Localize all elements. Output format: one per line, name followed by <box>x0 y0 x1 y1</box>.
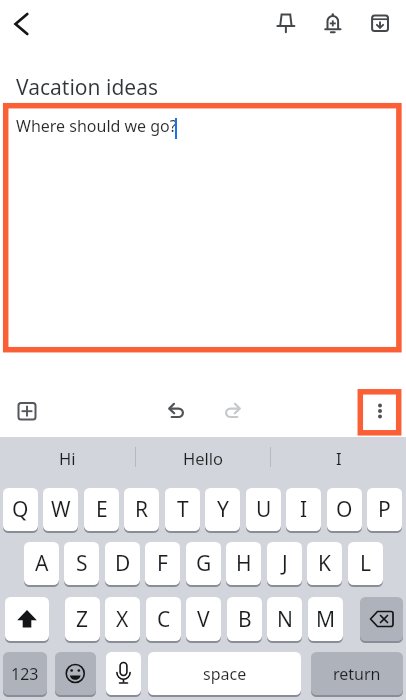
button[interactable]: L <box>348 542 383 585</box>
button[interactable]: Hi <box>0 437 135 479</box>
button[interactable] <box>360 597 403 641</box>
button[interactable]: Z <box>65 597 100 641</box>
staticText: U <box>256 495 272 524</box>
staticText: D <box>115 549 131 578</box>
button[interactable]: D <box>105 542 140 585</box>
staticText: M <box>316 605 336 634</box>
button[interactable] <box>163 396 193 426</box>
button[interactable]: I <box>271 437 406 479</box>
button[interactable]: I <box>286 488 321 531</box>
staticText: E <box>96 495 108 524</box>
button[interactable] <box>318 4 348 36</box>
button[interactable]: H <box>226 542 261 585</box>
button[interactable] <box>106 652 141 695</box>
button[interactable] <box>55 652 96 695</box>
staticText: P <box>378 495 391 524</box>
staticText: T <box>177 495 189 524</box>
staticText: return <box>333 663 381 685</box>
button[interactable] <box>4 8 40 42</box>
button[interactable]: J <box>267 542 302 585</box>
button[interactable]: E <box>84 488 119 531</box>
staticText: X <box>116 605 129 634</box>
staticText: A <box>35 549 49 578</box>
button[interactable]: W <box>43 488 78 531</box>
button[interactable]: N <box>267 597 302 641</box>
staticText: N <box>277 605 293 634</box>
button[interactable]: T <box>165 488 200 531</box>
staticText: Vacation ideas <box>16 73 158 102</box>
button[interactable]: G <box>186 542 221 585</box>
button[interactable]: U <box>246 488 281 531</box>
staticText: I <box>336 447 342 469</box>
staticText: J <box>282 549 288 578</box>
button[interactable] <box>5 597 49 641</box>
staticText: 123 <box>11 663 39 685</box>
staticText: Hello <box>183 447 224 469</box>
button[interactable]: S <box>64 542 99 585</box>
staticText: Q <box>12 495 29 524</box>
button[interactable]: space <box>148 652 301 695</box>
button[interactable]: K <box>307 542 342 585</box>
button[interactable]: Y <box>205 488 240 531</box>
button[interactable]: 123 <box>3 652 47 695</box>
button[interactable]: C <box>146 597 181 641</box>
button[interactable]: R <box>124 488 159 531</box>
staticText: space <box>203 663 247 685</box>
button[interactable]: B <box>227 597 262 641</box>
button[interactable]: F <box>145 542 180 585</box>
staticText: H <box>236 549 252 578</box>
button[interactable] <box>12 396 44 428</box>
button[interactable]: O <box>327 488 362 531</box>
button[interactable]: P <box>367 488 402 531</box>
staticText: Z <box>76 605 89 634</box>
button[interactable] <box>370 398 390 424</box>
button[interactable]: V <box>186 597 221 641</box>
button[interactable] <box>272 4 302 36</box>
button[interactable] <box>216 396 246 426</box>
staticText: I <box>300 495 308 524</box>
staticText: F <box>157 549 168 578</box>
button[interactable]: X <box>105 597 140 641</box>
staticText: V <box>197 605 210 634</box>
staticText: G <box>196 549 212 578</box>
staticText: W <box>51 495 71 524</box>
staticText: Hi <box>59 447 76 469</box>
staticText: Where should we go? <box>16 115 177 137</box>
button[interactable]: A <box>24 542 59 585</box>
staticText: L <box>360 549 372 578</box>
button[interactable] <box>364 4 394 36</box>
staticText: S <box>76 549 88 578</box>
staticText: K <box>318 549 331 578</box>
button[interactable]: M <box>308 597 343 641</box>
staticText: Y <box>217 495 229 524</box>
staticText: O <box>336 495 353 524</box>
staticText: B <box>238 605 252 634</box>
button[interactable]: Hello <box>136 437 271 479</box>
button[interactable]: Q <box>3 488 38 531</box>
button[interactable]: return <box>311 652 403 695</box>
staticText: C <box>157 605 171 634</box>
staticText: R <box>135 495 149 524</box>
